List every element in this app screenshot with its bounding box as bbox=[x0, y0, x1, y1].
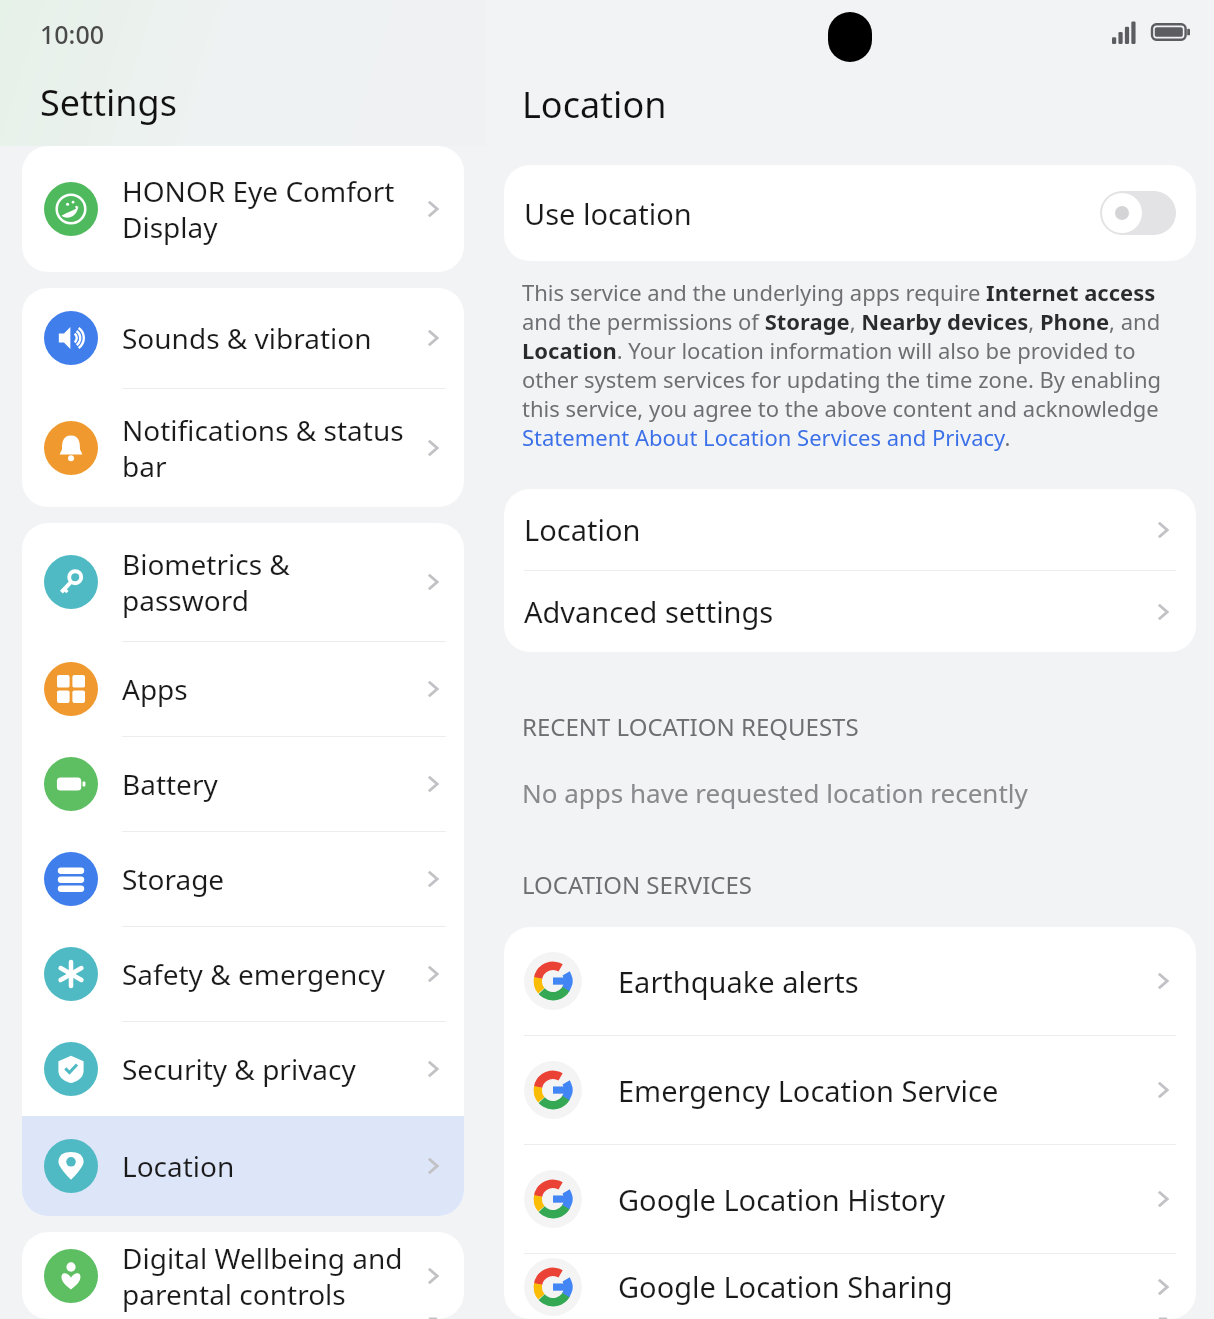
button[interactable]: HONOR Eye Comfort Display bbox=[22, 146, 464, 272]
staticText: RECENT LOCATION REQUESTS bbox=[522, 710, 859, 743]
button[interactable]: Advanced settings bbox=[504, 571, 1196, 652]
button[interactable]: Emergency Location Service bbox=[504, 1036, 1196, 1144]
button[interactable]: Location bbox=[22, 1116, 464, 1216]
staticText: 10:00 bbox=[40, 17, 105, 51]
staticText: Safety & emergency bbox=[122, 955, 386, 993]
staticText: Google Location Sharing bbox=[618, 1267, 1150, 1306]
button[interactable]: Use location toggle bbox=[1100, 191, 1176, 235]
button[interactable]: Notifications & status bar bbox=[22, 389, 464, 507]
button[interactable]: Location bbox=[504, 489, 1196, 570]
staticText: Biometrics & password bbox=[122, 545, 412, 619]
button[interactable]: Biometrics & password bbox=[22, 523, 464, 641]
button[interactable]: Battery bbox=[22, 737, 464, 831]
staticText: Security & privacy bbox=[122, 1050, 356, 1088]
button[interactable]: Apps bbox=[22, 642, 464, 736]
staticText: Settings bbox=[40, 78, 177, 127]
staticText: Storage bbox=[122, 860, 225, 898]
staticText: Location bbox=[122, 1147, 235, 1185]
staticText: HONOR Eye Comfort Display bbox=[122, 172, 412, 246]
staticText: No apps have requested location recently bbox=[522, 775, 1028, 810]
button[interactable]: Google Location Sharing bbox=[504, 1254, 1196, 1319]
button[interactable]: Earthquake alerts bbox=[504, 927, 1196, 1035]
staticText: Google Location History bbox=[618, 1180, 1150, 1219]
staticText: Notifications & status bar bbox=[122, 411, 412, 485]
button[interactable]: Google Location History bbox=[504, 1145, 1196, 1253]
staticText: Location bbox=[524, 510, 1150, 549]
staticText: Battery bbox=[122, 765, 218, 803]
staticText: Digital Wellbeing and parental controls bbox=[122, 1239, 412, 1313]
staticText: LOCATION SERVICES bbox=[522, 868, 753, 901]
staticText: Location bbox=[522, 80, 667, 129]
staticText: Earthquake alerts bbox=[618, 962, 1150, 1001]
button[interactable]: Sounds & vibration bbox=[22, 288, 464, 388]
staticText: Emergency Location Service bbox=[618, 1071, 1150, 1110]
button[interactable]: Security & privacy bbox=[22, 1022, 464, 1116]
staticText: Sounds & vibration bbox=[122, 319, 372, 357]
staticText: Apps bbox=[122, 670, 188, 708]
button[interactable]: Use location bbox=[504, 165, 1196, 261]
button[interactable]: Storage bbox=[22, 832, 464, 926]
staticText: Advanced settings bbox=[524, 592, 1150, 631]
button[interactable]: Safety & emergency bbox=[22, 927, 464, 1021]
button[interactable]: Digital Wellbeing and parental controls bbox=[22, 1232, 464, 1319]
staticText: This service and the underlying apps req… bbox=[522, 277, 1190, 453]
staticText: Use location bbox=[524, 194, 692, 233]
